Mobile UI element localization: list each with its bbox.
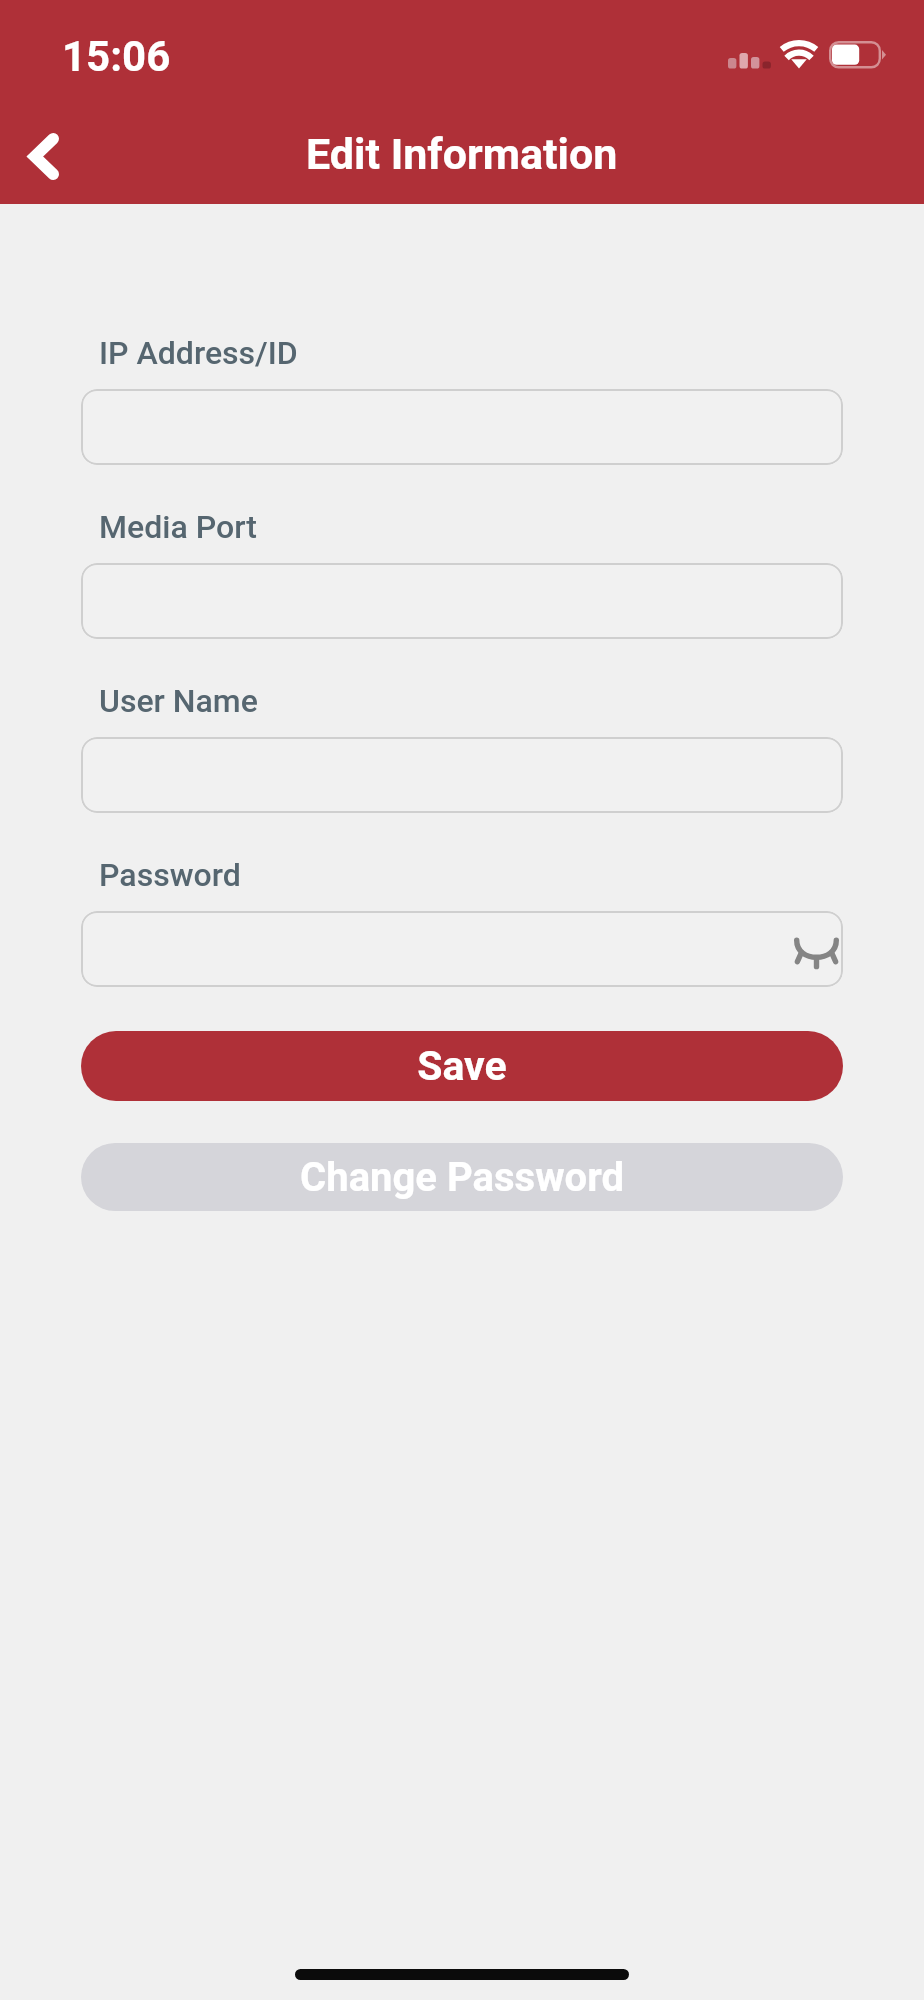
staticText: IP Address/ID — [99, 334, 298, 372]
button[interactable]: Change Password — [81, 1143, 843, 1211]
button[interactable]: Show password — [777, 912, 843, 986]
button[interactable]: Back — [0, 102, 88, 198]
staticText: Change Password — [300, 1154, 624, 1201]
staticText: Save — [417, 1042, 507, 1090]
button[interactable]: Media Port — [81, 563, 843, 639]
button[interactable]: Password — [81, 911, 843, 987]
staticText: Password — [99, 856, 241, 894]
button[interactable]: IP Address/ID — [81, 389, 843, 465]
staticText: Media Port — [99, 508, 257, 546]
button[interactable]: Save — [81, 1031, 843, 1101]
staticText: User Name — [99, 682, 258, 720]
button[interactable]: User Name — [81, 737, 843, 813]
staticText: 15:06 — [62, 32, 171, 81]
staticText: Edit Information — [306, 129, 618, 179]
